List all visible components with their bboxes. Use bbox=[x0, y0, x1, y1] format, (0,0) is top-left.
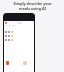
staticText: Simply describe your bbox=[13, 1, 52, 6]
staticText: meals using AI bbox=[19, 6, 46, 11]
